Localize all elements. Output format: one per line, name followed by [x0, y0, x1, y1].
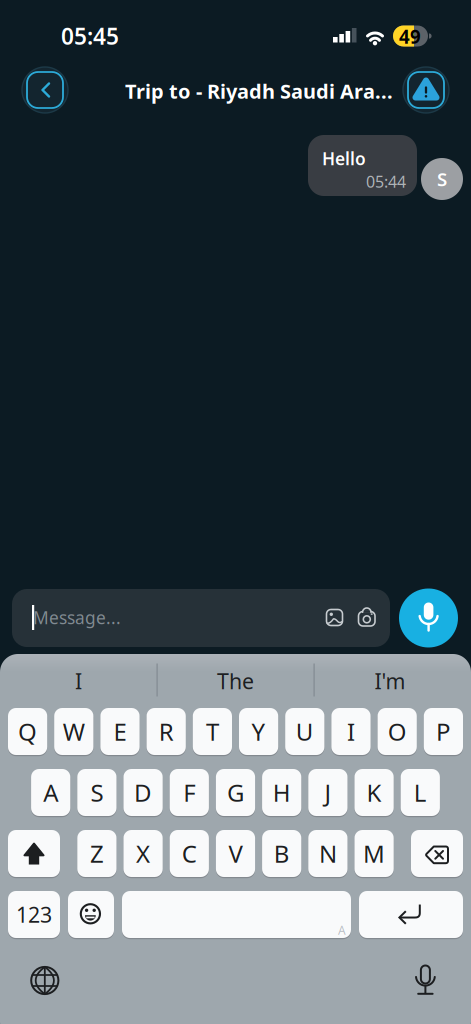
- staticText: B: [274, 838, 290, 869]
- staticText: E: [113, 716, 126, 747]
- staticText: H: [273, 777, 291, 808]
- staticText: Z: [90, 838, 104, 869]
- button[interactable]: F: [170, 768, 209, 817]
- button[interactable]: T: [193, 707, 232, 756]
- staticText: M: [363, 838, 385, 869]
- button[interactable]: Q: [8, 707, 47, 756]
- staticText: A: [43, 777, 58, 808]
- button[interactable]: E: [100, 707, 140, 756]
- button[interactable]: Y: [239, 707, 278, 756]
- staticText: Trip to - Riyadh Saudi Ara...: [125, 78, 393, 104]
- button[interactable]: C: [170, 829, 209, 878]
- button[interactable]: [320, 603, 348, 631]
- staticText: S: [90, 777, 103, 808]
- button[interactable]: [359, 890, 463, 939]
- button[interactable]: The: [160, 661, 310, 701]
- staticText: I: [75, 667, 82, 695]
- staticText: Q: [18, 716, 37, 747]
- staticText: A: [338, 922, 346, 938]
- staticText: N: [319, 838, 337, 869]
- staticText: 05:45: [61, 21, 119, 51]
- staticText: S: [437, 167, 447, 191]
- button[interactable]: Message...: [12, 589, 390, 647]
- button[interactable]: R: [147, 707, 186, 756]
- button[interactable]: [122, 890, 351, 939]
- staticText: X: [136, 838, 150, 869]
- button[interactable]: K: [354, 768, 394, 817]
- button[interactable]: [402, 66, 449, 113]
- button[interactable]: I: [331, 707, 371, 756]
- staticText: Message...: [33, 606, 121, 629]
- button[interactable]: U: [285, 707, 324, 756]
- button[interactable]: [399, 588, 458, 647]
- staticText: 05:44: [366, 171, 406, 192]
- staticText: Hello: [322, 147, 366, 170]
- button[interactable]: [411, 829, 463, 878]
- staticText: D: [134, 777, 152, 808]
- button[interactable]: I: [3, 661, 153, 701]
- staticText: 123: [16, 900, 52, 929]
- staticText: G: [227, 777, 244, 808]
- staticText: P: [436, 716, 451, 747]
- button[interactable]: A: [31, 768, 70, 817]
- staticText: L: [414, 777, 427, 808]
- button[interactable]: V: [216, 829, 255, 878]
- button[interactable]: [21, 66, 68, 113]
- button[interactable]: L: [401, 768, 440, 817]
- staticText: U: [296, 716, 314, 747]
- button[interactable]: X: [123, 829, 163, 878]
- button[interactable]: H: [262, 768, 301, 817]
- staticText: 49: [399, 24, 421, 49]
- staticText: K: [367, 777, 382, 808]
- button[interactable]: [353, 604, 381, 632]
- staticText: W: [63, 716, 85, 747]
- button[interactable]: P: [424, 707, 463, 756]
- button[interactable]: W: [54, 707, 93, 756]
- staticText: V: [228, 838, 242, 869]
- button[interactable]: S: [77, 768, 116, 817]
- button[interactable]: [28, 963, 62, 997]
- button[interactable]: B: [262, 829, 301, 878]
- staticText: R: [159, 716, 174, 747]
- staticText: The: [217, 667, 254, 695]
- button[interactable]: [8, 829, 60, 878]
- button[interactable]: N: [308, 829, 347, 878]
- button[interactable]: [413, 963, 437, 997]
- staticText: I: [347, 716, 355, 747]
- button[interactable]: D: [123, 768, 163, 817]
- button[interactable]: Z: [77, 829, 116, 878]
- button[interactable]: I'm: [315, 661, 465, 701]
- button[interactable]: J: [308, 768, 347, 817]
- button[interactable]: S: [421, 158, 463, 200]
- staticText: J: [324, 777, 331, 808]
- staticText: F: [183, 777, 195, 808]
- button[interactable]: 123: [8, 890, 60, 939]
- button[interactable]: M: [354, 829, 394, 878]
- staticText: Y: [252, 716, 266, 747]
- button[interactable]: O: [378, 707, 417, 756]
- button[interactable]: [68, 890, 114, 939]
- staticText: C: [182, 838, 197, 869]
- staticText: I'm: [374, 667, 405, 695]
- staticText: T: [206, 716, 219, 747]
- staticText: O: [388, 716, 407, 747]
- button[interactable]: G: [216, 768, 255, 817]
